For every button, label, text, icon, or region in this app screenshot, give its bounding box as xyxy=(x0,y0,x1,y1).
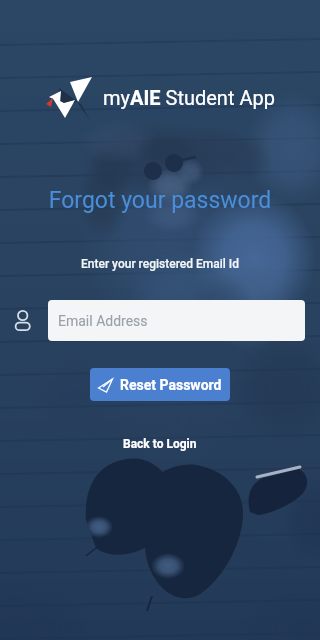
staticText: Email Address xyxy=(58,313,148,329)
button[interactable]: Reset Password xyxy=(90,368,230,401)
staticText: Back to Login xyxy=(123,437,197,451)
staticText: Enter your registered Email Id xyxy=(0,257,320,271)
staticText: myAIE Student App xyxy=(103,86,275,109)
staticText: Forgot your password xyxy=(0,187,320,214)
button[interactable]: Email Address xyxy=(48,300,305,341)
staticText: Reset Password xyxy=(120,377,222,393)
button[interactable]: Back to Login xyxy=(113,431,207,457)
